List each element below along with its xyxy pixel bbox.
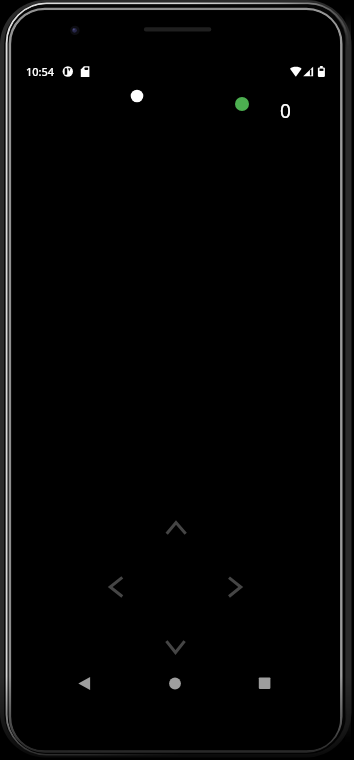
button[interactable]: Back: [62, 666, 106, 702]
staticText: 10:54: [26, 64, 55, 79]
button[interactable]: Home: [153, 666, 197, 702]
staticText: 0: [280, 98, 291, 124]
button[interactable]: Move left: [94, 565, 140, 609]
button[interactable]: Move up: [154, 502, 198, 554]
button[interactable]: Recent apps: [243, 666, 287, 702]
button[interactable]: Move right: [213, 565, 259, 609]
button[interactable]: Move down: [154, 621, 198, 673]
